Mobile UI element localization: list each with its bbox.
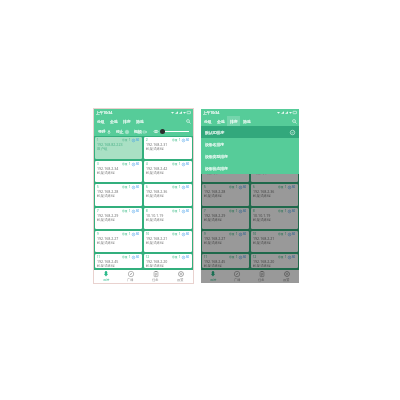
- staticText: 机架式终端: [146, 147, 164, 151]
- button[interactable]: 任务: [249, 270, 274, 283]
- staticText: 8: [146, 209, 148, 213]
- button[interactable]: 1: [95, 137, 142, 159]
- staticText: 音量: [172, 232, 178, 236]
- button[interactable]: 设备状态排序: [201, 162, 299, 174]
- button[interactable]: 寻呼: [94, 270, 118, 283]
- button[interactable]: 7: [95, 208, 142, 229]
- staticText: 音量: [229, 255, 235, 259]
- button[interactable]: 9: [95, 231, 142, 252]
- staticText: 机架式终端: [97, 218, 115, 222]
- staticText: 音量: [172, 255, 178, 259]
- staticText: 192.168.2.36: [253, 189, 275, 194]
- staticText: 60: [243, 209, 247, 213]
- button[interactable]: 分组: [201, 116, 214, 126]
- button[interactable]: 设置: [274, 270, 299, 283]
- staticText: 音量: [122, 185, 128, 189]
- staticText: 9: [204, 232, 206, 236]
- staticText: 机架式终端: [146, 171, 164, 175]
- button[interactable]: 12: [144, 254, 192, 268]
- staticText: 全选: [217, 119, 225, 124]
- staticText: 192.168.2.45: [97, 259, 119, 264]
- button[interactable]: 寻呼: [205, 129, 218, 134]
- staticText: 1: [129, 185, 131, 189]
- button[interactable]: 筛选: [133, 116, 146, 126]
- button[interactable]: 停止: [116, 129, 129, 134]
- staticText: 60: [186, 255, 190, 259]
- other: 音量: [154, 130, 158, 133]
- staticText: 音量: [172, 162, 178, 166]
- button[interactable]: 广播: [118, 270, 143, 283]
- staticText: 1: [236, 255, 238, 259]
- button[interactable]: 12: [251, 254, 298, 268]
- button[interactable]: 广播: [225, 270, 249, 283]
- staticText: 默认ID排序: [205, 130, 225, 135]
- staticText: 机架式终端: [204, 171, 222, 175]
- button[interactable]: 搜索: [289, 116, 299, 126]
- staticText: 上午10:34: [96, 110, 113, 115]
- button[interactable]: 11: [95, 254, 142, 268]
- button[interactable]: 4: [251, 161, 298, 182]
- staticText: 任务: [152, 278, 159, 282]
- button[interactable]: 任务: [143, 270, 168, 283]
- staticText: 1: [129, 162, 131, 166]
- button[interactable]: 全选: [107, 116, 120, 126]
- staticText: 60: [186, 162, 190, 166]
- button[interactable]: 3: [95, 161, 142, 182]
- staticText: 60: [136, 255, 140, 259]
- button[interactable]: 8: [251, 208, 298, 229]
- button[interactable]: 2: [251, 137, 298, 159]
- button[interactable]: 1: [202, 137, 249, 159]
- staticText: 机架式终端: [253, 171, 271, 175]
- button[interactable]: 寻呼: [201, 270, 225, 283]
- button[interactable]: 6: [251, 184, 298, 206]
- button[interactable]: 搜索: [183, 116, 193, 126]
- staticText: 音量: [229, 185, 235, 189]
- button[interactable]: 6: [144, 184, 192, 206]
- button[interactable]: 5: [95, 184, 142, 206]
- button[interactable]: 8: [144, 208, 192, 229]
- button[interactable]: 3: [202, 161, 249, 182]
- button[interactable]: 设置: [168, 270, 193, 283]
- staticText: 60: [243, 255, 247, 259]
- staticText: 192.168.2.29: [97, 213, 119, 218]
- button[interactable]: 9: [202, 231, 249, 252]
- button[interactable]: 5: [202, 184, 249, 206]
- staticText: 筛选: [243, 119, 251, 124]
- button[interactable]: 视频: [134, 129, 147, 134]
- button[interactable]: 7: [202, 208, 249, 229]
- button[interactable]: 默认ID排序: [201, 126, 299, 138]
- button[interactable]: 寻呼: [98, 129, 111, 134]
- staticText: 用户组: [97, 147, 108, 151]
- staticText: 1: [129, 209, 131, 213]
- button[interactable]: 4: [144, 161, 192, 182]
- button[interactable]: 设备类型排序: [201, 150, 299, 162]
- staticText: 5: [204, 185, 206, 189]
- button[interactable]: 排序: [227, 116, 240, 126]
- button[interactable]: 11: [202, 254, 249, 268]
- staticText: 192.168.2.28: [204, 189, 226, 194]
- button[interactable]: 全选: [214, 116, 227, 126]
- button[interactable]: 停止: [223, 129, 236, 134]
- button[interactable]: 2: [144, 137, 192, 159]
- staticText: 1: [179, 162, 181, 166]
- staticText: 60: [243, 185, 247, 189]
- button[interactable]: 排序: [120, 116, 133, 126]
- staticText: 60: [292, 255, 296, 259]
- staticText: 60: [292, 185, 296, 189]
- staticText: 1: [179, 185, 181, 189]
- staticText: 60: [136, 232, 140, 236]
- button[interactable]: 筛选: [240, 116, 253, 126]
- button[interactable]: 10: [144, 231, 192, 252]
- button[interactable]: 10: [251, 231, 298, 252]
- button[interactable]: 设备名排序: [201, 138, 299, 150]
- staticText: 8: [253, 209, 255, 213]
- staticText: 设备状态排序: [205, 166, 228, 171]
- button[interactable]: 分组: [94, 116, 107, 126]
- staticText: 12: [253, 255, 257, 259]
- staticText: 192.168.2.31: [146, 142, 168, 147]
- staticText: 3: [97, 162, 99, 166]
